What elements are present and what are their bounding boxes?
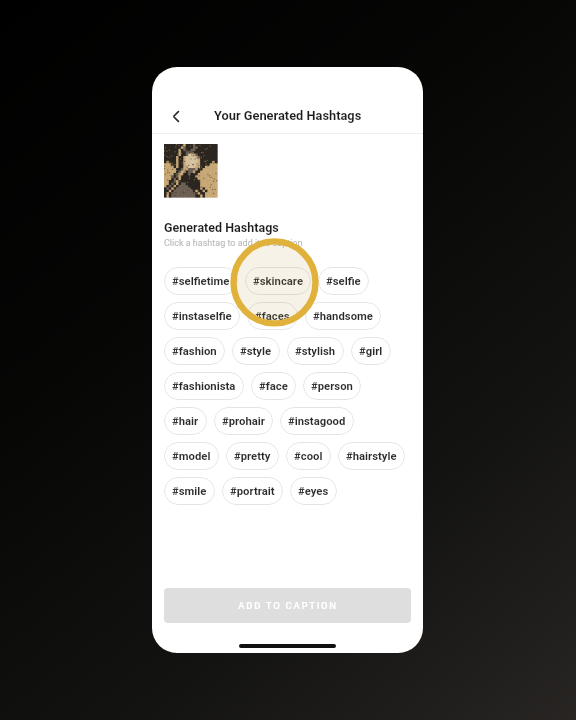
button[interactable]: #cool bbox=[286, 442, 331, 470]
button[interactable]: #pretty bbox=[226, 442, 279, 470]
staticText: Generated Hashtags bbox=[164, 220, 279, 235]
button[interactable]: #prohair bbox=[214, 407, 273, 435]
staticText: #girl bbox=[359, 345, 383, 358]
button[interactable]: #fashionista bbox=[164, 372, 244, 400]
button[interactable]: #girl bbox=[351, 337, 391, 365]
staticText: #smile bbox=[172, 485, 207, 498]
button[interactable]: #eyes bbox=[290, 477, 337, 505]
staticText: #face bbox=[259, 380, 288, 393]
staticText: #stylish bbox=[295, 345, 336, 358]
staticText: ADD TO CAPTION bbox=[238, 600, 338, 611]
staticText: #prohair bbox=[222, 415, 265, 428]
staticText: #person bbox=[311, 380, 353, 393]
staticText: #selfie bbox=[326, 275, 361, 288]
button[interactable]: #person bbox=[303, 372, 361, 400]
button[interactable]: #model bbox=[164, 442, 219, 470]
staticText: #hair bbox=[172, 415, 199, 428]
button[interactable]: #style bbox=[232, 337, 280, 365]
button[interactable]: Back bbox=[161, 101, 191, 131]
staticText: #handsome bbox=[313, 310, 373, 323]
button[interactable]: #portrait bbox=[222, 477, 283, 505]
staticText: #selfietime bbox=[172, 275, 230, 288]
button[interactable]: #smile bbox=[164, 477, 215, 505]
button[interactable]: #faces bbox=[247, 302, 298, 330]
staticText: #instaselfie bbox=[172, 310, 232, 323]
staticText: #portrait bbox=[230, 485, 275, 498]
staticText: #model bbox=[172, 450, 211, 463]
button[interactable]: #hair bbox=[164, 407, 207, 435]
staticText: #hairstyle bbox=[346, 450, 397, 463]
button[interactable]: #selfie bbox=[318, 267, 369, 295]
staticText: #faces bbox=[255, 310, 290, 323]
button[interactable]: #fashion bbox=[164, 337, 225, 365]
staticText: #eyes bbox=[298, 485, 329, 498]
button[interactable]: #instagood bbox=[280, 407, 354, 435]
button[interactable]: #face bbox=[251, 372, 296, 400]
staticText: #cool bbox=[294, 450, 323, 463]
staticText: Your Generated Hashtags bbox=[214, 108, 362, 123]
button[interactable]: #handsome bbox=[305, 302, 381, 330]
staticText: #skincare bbox=[253, 275, 303, 288]
button[interactable]: #selfietime bbox=[164, 267, 238, 295]
staticText: #fashionista bbox=[172, 380, 236, 393]
staticText: #pretty bbox=[234, 450, 271, 463]
staticText: Click a hashtag to add it to caption bbox=[164, 238, 303, 249]
staticText: #instagood bbox=[288, 415, 346, 428]
button[interactable]: ADD TO CAPTION bbox=[164, 588, 411, 623]
button[interactable]: #skincare bbox=[245, 267, 311, 295]
staticText: #style bbox=[240, 345, 272, 358]
staticText: #fashion bbox=[172, 345, 217, 358]
button[interactable]: #hairstyle bbox=[338, 442, 405, 470]
button[interactable]: #stylish bbox=[287, 337, 344, 365]
button[interactable]: #instaselfie bbox=[164, 302, 240, 330]
